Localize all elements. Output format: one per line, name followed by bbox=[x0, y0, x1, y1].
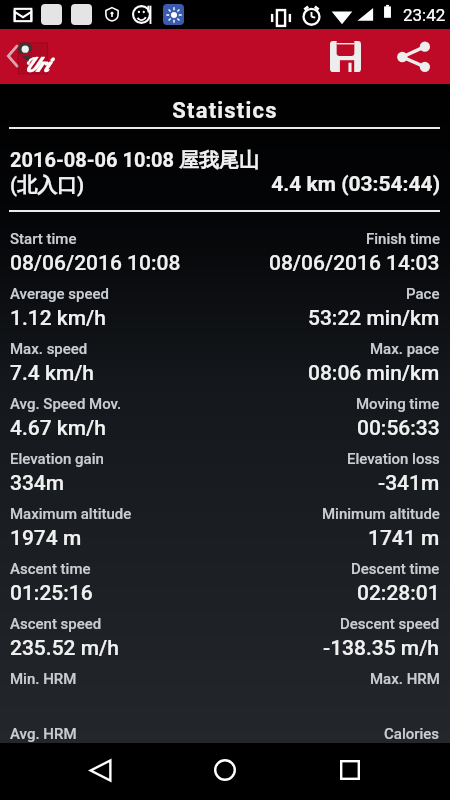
staticText: Maximum altitude bbox=[10, 505, 132, 523]
staticText: 1741 m bbox=[368, 526, 440, 551]
staticText: Min. HRM bbox=[10, 670, 77, 688]
button[interactable]: Save bbox=[318, 29, 373, 84]
staticText: 1.12 km/h bbox=[10, 306, 106, 331]
staticText: 53:22 min/km bbox=[308, 306, 440, 331]
staticText: Moving time bbox=[356, 395, 440, 413]
button[interactable]: Avg. HRM bbox=[0, 715, 450, 770]
button[interactable]: Maximum altitude bbox=[0, 495, 450, 550]
staticText: 1974 m bbox=[10, 526, 82, 551]
staticText: Finish time bbox=[366, 230, 440, 248]
button[interactable]: Share bbox=[386, 29, 441, 84]
staticText: 02:28:01 bbox=[357, 581, 440, 606]
button[interactable]: Start time bbox=[0, 220, 450, 275]
staticText: Avg. HRM bbox=[10, 725, 77, 743]
staticText: 7.4 km/h bbox=[10, 361, 95, 386]
staticText: Ascent time bbox=[10, 560, 91, 578]
staticText: 235.52 m/h bbox=[10, 636, 119, 661]
staticText: -138.35 m/h bbox=[323, 636, 440, 661]
button[interactable]: Max. speed bbox=[0, 330, 450, 385]
button[interactable]: Home bbox=[197, 743, 253, 799]
staticText: 08/06/2016 14:03 bbox=[269, 251, 440, 276]
staticText: Calories bbox=[384, 725, 440, 743]
staticText: Avg. Speed Mov. bbox=[10, 395, 122, 413]
staticText: 00:56:33 bbox=[357, 416, 440, 441]
staticText: Uri bbox=[23, 53, 48, 77]
staticText: 08/06/2016 10:08 bbox=[10, 251, 181, 276]
staticText: Max. pace bbox=[370, 340, 440, 358]
button[interactable]: Ascent time bbox=[0, 550, 450, 605]
staticText: -341m bbox=[378, 471, 440, 496]
staticText: Max. speed bbox=[10, 340, 88, 358]
staticText: Statistics bbox=[0, 98, 450, 124]
button[interactable]: Ascent speed bbox=[0, 605, 450, 660]
staticText: Minimum altitude bbox=[322, 505, 440, 523]
staticText: Ascent speed bbox=[10, 615, 102, 633]
staticText: 08:06 min/km bbox=[308, 361, 440, 386]
button[interactable]: Navigate up bbox=[0, 29, 58, 84]
staticText: Elevation loss bbox=[347, 450, 440, 468]
staticText: 4.67 km/h bbox=[10, 416, 106, 441]
staticText: 01:25:16 bbox=[10, 581, 93, 606]
staticText: Descent speed bbox=[340, 615, 440, 633]
button[interactable]: Elevation gain bbox=[0, 440, 450, 495]
staticText: Start time bbox=[10, 230, 77, 248]
button[interactable]: Average speed bbox=[0, 275, 450, 330]
button[interactable]: Back bbox=[72, 743, 128, 799]
staticText: 2016-08-06 10:08 屋我尾山 (北入口) bbox=[10, 148, 450, 198]
button[interactable]: Avg. Speed Mov. bbox=[0, 385, 450, 440]
button[interactable]: Min. HRM bbox=[0, 660, 450, 715]
staticText: Elevation gain bbox=[10, 450, 104, 468]
staticText: Descent time bbox=[351, 560, 440, 578]
staticText: Average speed bbox=[10, 285, 110, 303]
staticText: 334m bbox=[10, 471, 65, 496]
staticText: Pace bbox=[406, 285, 440, 303]
staticText: 4.4 km (03:54:44) bbox=[0, 172, 440, 197]
staticText: Max. HRM bbox=[370, 670, 440, 688]
staticText: 23:42 bbox=[403, 5, 446, 25]
button[interactable]: Recents bbox=[322, 743, 378, 799]
